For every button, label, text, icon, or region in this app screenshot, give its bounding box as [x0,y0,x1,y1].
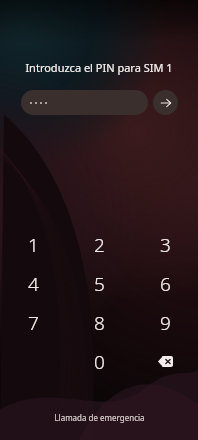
button[interactable]: 2 [66,225,132,264]
button[interactable]: 5 [66,264,132,303]
button[interactable]: 1 [0,225,66,264]
button[interactable]: 8 [66,303,132,342]
button[interactable]: 0 [66,342,132,381]
staticText: 9 [160,310,171,336]
staticText: Introduzca el PIN para SIM 1 [25,60,173,75]
staticText: Llamada de emergencia [54,412,145,423]
button[interactable] [21,90,148,115]
staticText: 1 [28,232,39,258]
staticText: 2 [94,232,105,258]
staticText: 8 [94,310,105,336]
button[interactable]: Llamada de emergencia [46,409,153,426]
staticText: 5 [94,271,105,297]
staticText: 4 [28,271,39,297]
button[interactable]: Backspace [132,342,198,381]
button[interactable]: 7 [0,303,66,342]
button[interactable]: 3 [132,225,198,264]
button[interactable]: Enter PIN [153,90,178,115]
staticText: 6 [160,271,171,297]
staticText: 0 [94,349,105,375]
button[interactable]: 6 [132,264,198,303]
button[interactable]: 9 [132,303,198,342]
button[interactable]: 4 [0,264,66,303]
staticText: 3 [160,232,171,258]
staticText: 7 [28,310,39,336]
